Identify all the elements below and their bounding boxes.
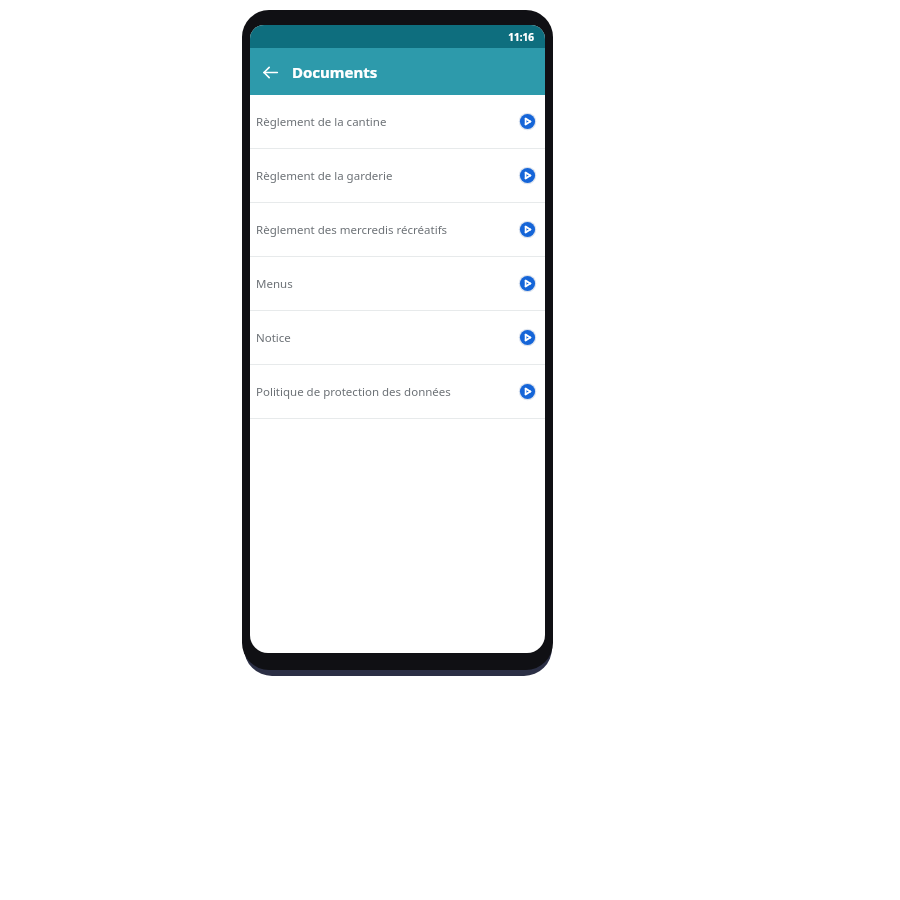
button[interactable]: Back [254,56,286,88]
button[interactable]: Règlement de la cantine [250,95,545,148]
staticText: Règlement de la garderie [256,168,512,184]
staticText: Règlement des mercredis récréatifs [256,222,512,238]
staticText: Menus [256,276,512,292]
button[interactable]: Politique de protection des données [250,365,545,418]
staticText: 11:16 [508,30,534,44]
button[interactable]: Règlement de la garderie [250,149,545,202]
staticText: Documents [292,62,378,82]
button[interactable]: Menus [250,257,545,310]
button[interactable]: Règlement des mercredis récréatifs [250,203,545,256]
staticText: Politique de protection des données [256,384,512,400]
staticText: Règlement de la cantine [256,114,512,130]
button[interactable]: Notice [250,311,545,364]
staticText: Notice [256,330,512,346]
